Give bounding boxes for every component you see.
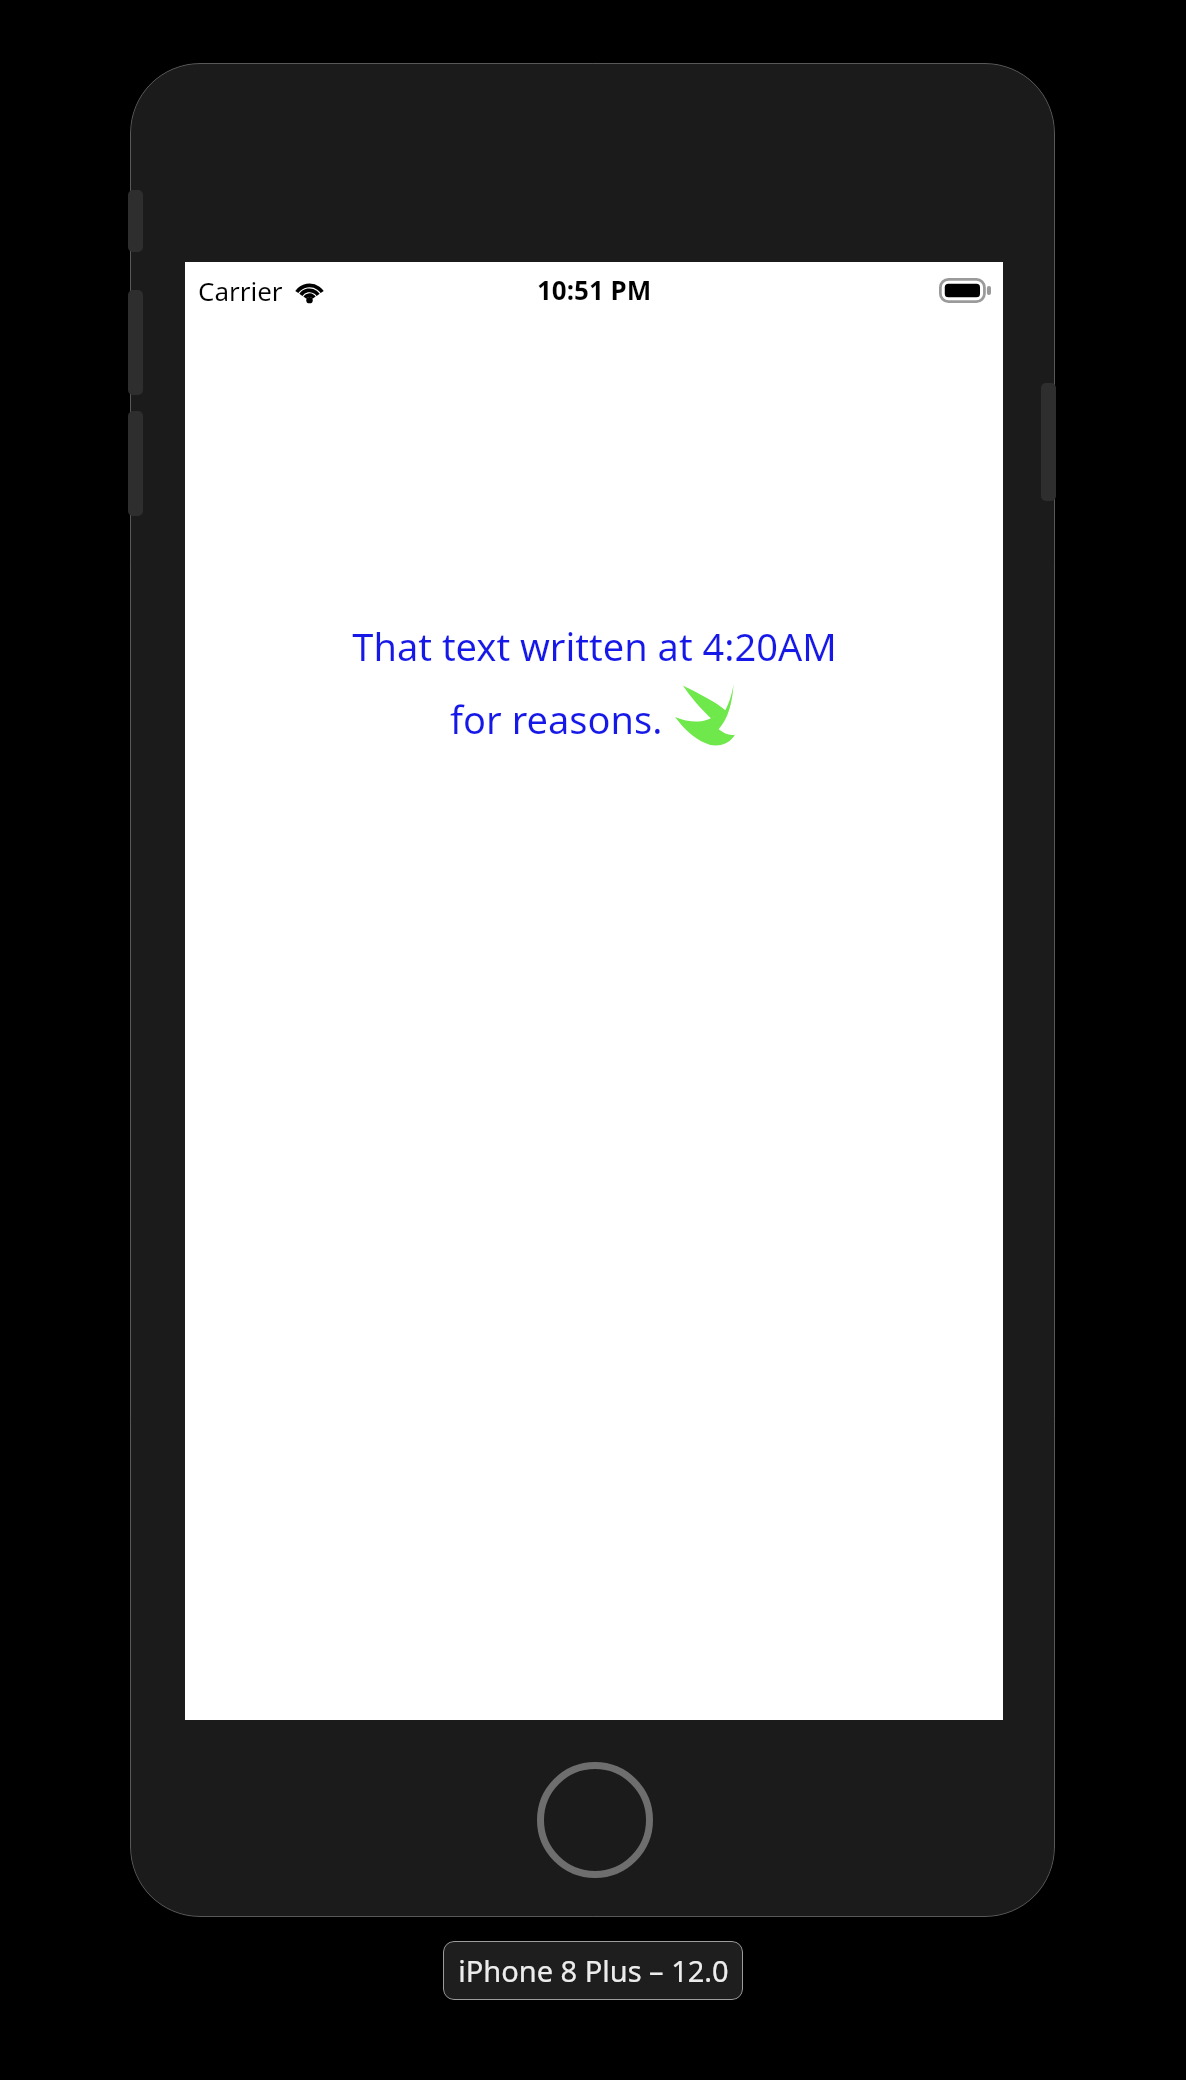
staticText: That text written at 4:20AM bbox=[352, 620, 837, 672]
staticText: 10:51 PM bbox=[537, 272, 652, 307]
button[interactable]: iPhone 8 Plus – 12.0 bbox=[443, 1941, 743, 2000]
staticText: for reasons. bbox=[450, 693, 663, 745]
button[interactable]: Home bbox=[537, 1762, 653, 1878]
staticText: Carrier bbox=[198, 273, 283, 308]
staticText: iPhone 8 Plus – 12.0 bbox=[458, 1951, 729, 1990]
